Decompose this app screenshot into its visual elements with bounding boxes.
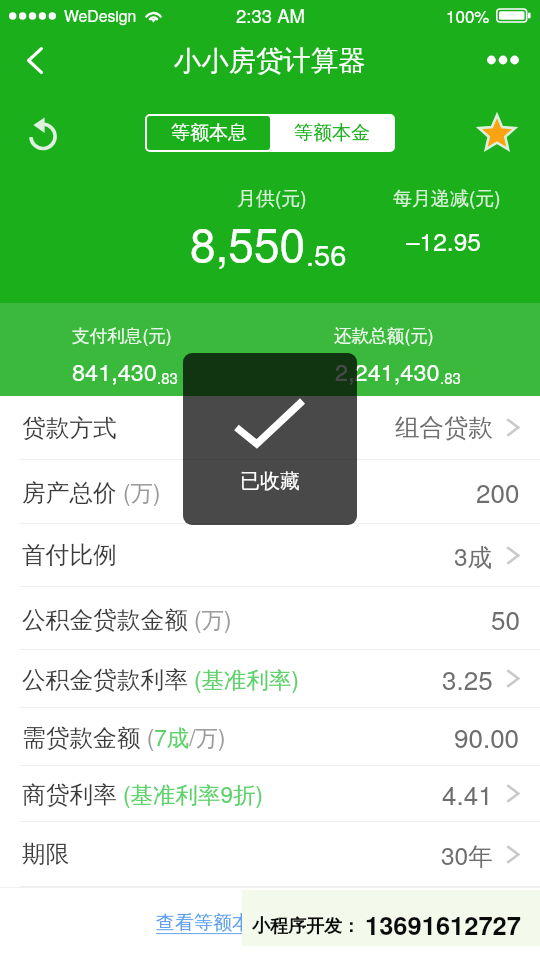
button[interactable]: 等额本息 [147,116,270,150]
staticText: 公积金贷款利率 (基准利率) [22,662,300,695]
button[interactable]: More options [478,34,536,86]
staticText: 公积金贷款金额 (万) [22,602,232,635]
button[interactable]: 期限 [0,822,540,886]
button[interactable]: 商贷利率 (基准利率9折) [0,766,540,821]
button[interactable]: 贷款方式 [0,396,540,459]
staticText: 房产总价 (万) [22,475,161,508]
button[interactable]: 需贷款金额 (7成/万) [0,708,540,765]
button[interactable]: 首付比例 [0,524,540,586]
staticText: 3成 [454,538,493,573]
staticText: .83 [440,367,461,388]
staticText: 2:33 AM [236,2,305,28]
staticText: .56 [306,233,347,275]
staticText: WeDesign [64,4,137,27]
staticText: 3.25 [442,660,493,697]
staticText: 期限 [22,839,70,869]
button[interactable]: 公积金贷款利率 (基准利率) [0,650,540,707]
button[interactable]: Back [8,34,62,86]
staticText: 小小房贷计算器 [174,44,366,79]
staticText: 等额本金 [294,121,370,145]
staticText: 查看等额本息每月还款明细 [156,911,384,935]
staticText: 13691612727 [365,906,521,943]
staticText: 支付利息(元) [72,322,172,347]
staticText: 商贷利率 (基准利率9折) [22,777,264,810]
staticText: .83 [157,367,178,388]
staticText: 30年 [441,837,493,872]
staticText: 需贷款金额 (7成/万) [22,720,226,753]
button[interactable]: 公积金贷款金额 (万) [0,587,540,649]
staticText: 200 [476,473,520,510]
button[interactable]: 查看等额本息每月还款明细 [0,888,540,960]
button[interactable]: Favorite [473,109,520,156]
staticText: 月供(元) [237,183,307,210]
button[interactable]: Reset [19,111,67,159]
staticText: 已收藏 [240,469,300,494]
staticText: 50 [491,600,520,637]
button[interactable]: 房产总价 (万) [0,460,540,523]
staticText: 还款总额(元) [334,322,434,347]
staticText: 90.00 [454,718,520,755]
staticText: 100% [446,3,490,27]
staticText: 首付比例 [22,540,117,570]
staticText: 841,430 [72,354,157,388]
staticText: 8,550 [190,209,306,275]
button[interactable]: 等额本金 [270,116,393,150]
staticText: 贷款方式 [22,413,117,443]
staticText: –12.95 [406,223,481,258]
staticText: 等额本息 [171,121,247,145]
staticText: 2,241,430 [335,354,440,388]
staticText: 组合贷款 [395,412,493,443]
staticText: 每月递减(元) [393,183,501,210]
staticText: 4.41 [442,775,493,812]
staticText: 小程序开发： [252,915,360,938]
